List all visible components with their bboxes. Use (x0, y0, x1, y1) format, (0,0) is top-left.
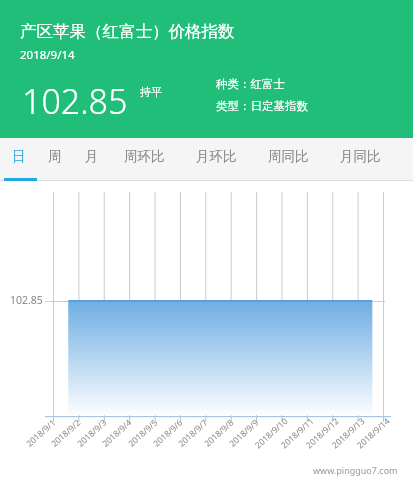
staticText: 周同比 (268, 148, 309, 165)
staticText: 2018/9/14 (20, 47, 75, 63)
staticText: 2018/9/10 (252, 415, 291, 451)
staticText: 种类：红富士 (216, 77, 285, 91)
button[interactable]: 周同比 (268, 146, 309, 174)
staticText: 2018/9/11 (278, 415, 317, 451)
staticText: 月 (85, 148, 99, 165)
staticText: 日 (12, 148, 26, 165)
staticText: 2018/9/7 (176, 416, 210, 449)
staticText: 2018/9/3 (75, 416, 109, 449)
button[interactable]: 月 (85, 146, 99, 174)
staticText: 102.85 (10, 293, 43, 307)
staticText: 2018/9/6 (151, 416, 185, 449)
staticText: 类型：日定基指数 (216, 99, 308, 113)
staticText: 2018/9/8 (202, 416, 236, 449)
staticText: 周环比 (124, 148, 165, 165)
staticText: 2018/9/1 (24, 416, 58, 449)
staticText: 2018/9/4 (100, 416, 134, 449)
button[interactable]: 周环比 (124, 146, 165, 174)
button[interactable]: 周 (48, 146, 62, 174)
button[interactable]: 月同比 (340, 146, 381, 174)
staticText: 2018/9/13 (329, 415, 368, 451)
staticText: 周 (48, 148, 62, 165)
staticText: www.pingguo7.com (313, 464, 398, 476)
staticText: 102.85 (22, 78, 128, 124)
staticText: 2018/9/2 (49, 416, 83, 449)
staticText: 2018/9/14 (354, 415, 393, 451)
staticText: 持平 (140, 85, 162, 99)
staticText: 月环比 (196, 148, 237, 165)
staticText: 2018/9/5 (126, 416, 160, 449)
button[interactable]: 日 (12, 146, 26, 174)
staticText: 月同比 (340, 148, 381, 165)
button[interactable]: 月环比 (196, 146, 237, 174)
staticText: 2018/9/9 (227, 416, 261, 449)
staticText: 产区苹果（红富士）价格指数 (20, 21, 235, 42)
staticText: 2018/9/12 (303, 415, 342, 451)
